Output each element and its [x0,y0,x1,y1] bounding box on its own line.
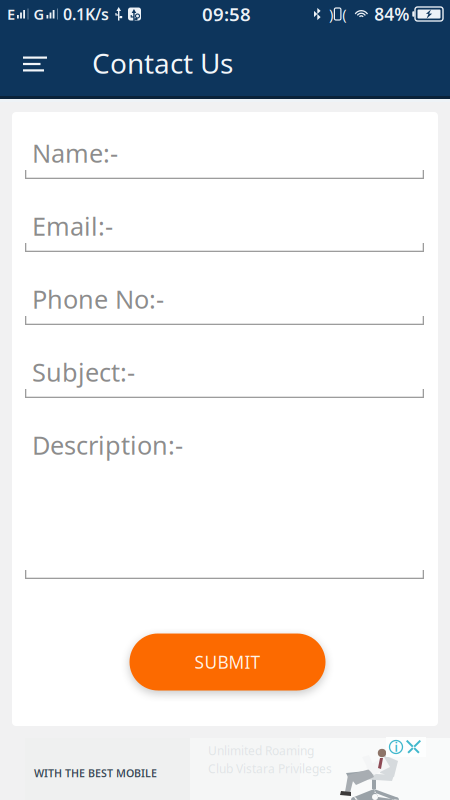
button[interactable]: Close ad [406,738,423,755]
staticText: WITH THE BEST MOBILE [34,766,157,780]
button[interactable]: Menu [13,42,57,86]
staticText: Email:- [32,209,113,243]
staticText: 09:58 [202,2,251,26]
staticText: Description:- [32,428,183,462]
staticText: 84% [374,2,409,25]
staticText: i [394,739,397,755]
staticText: ( [342,4,346,24]
staticText: Club Vistara Privileges [208,760,332,776]
staticText: Name:- [32,136,118,170]
button[interactable]: SUBMIT [129,633,325,690]
button[interactable]: Ad information [387,738,404,755]
staticText: Unlimited Roaming [208,742,314,758]
staticText: Phone No:- [32,282,164,316]
staticText: SUBMIT [194,650,260,673]
staticText: Subject:- [32,355,135,389]
staticText: G [33,4,44,24]
staticText: E [7,4,15,24]
staticText: 0.1K/s [63,3,109,25]
staticText: ) [329,4,333,24]
staticText: Contact Us [92,44,233,82]
